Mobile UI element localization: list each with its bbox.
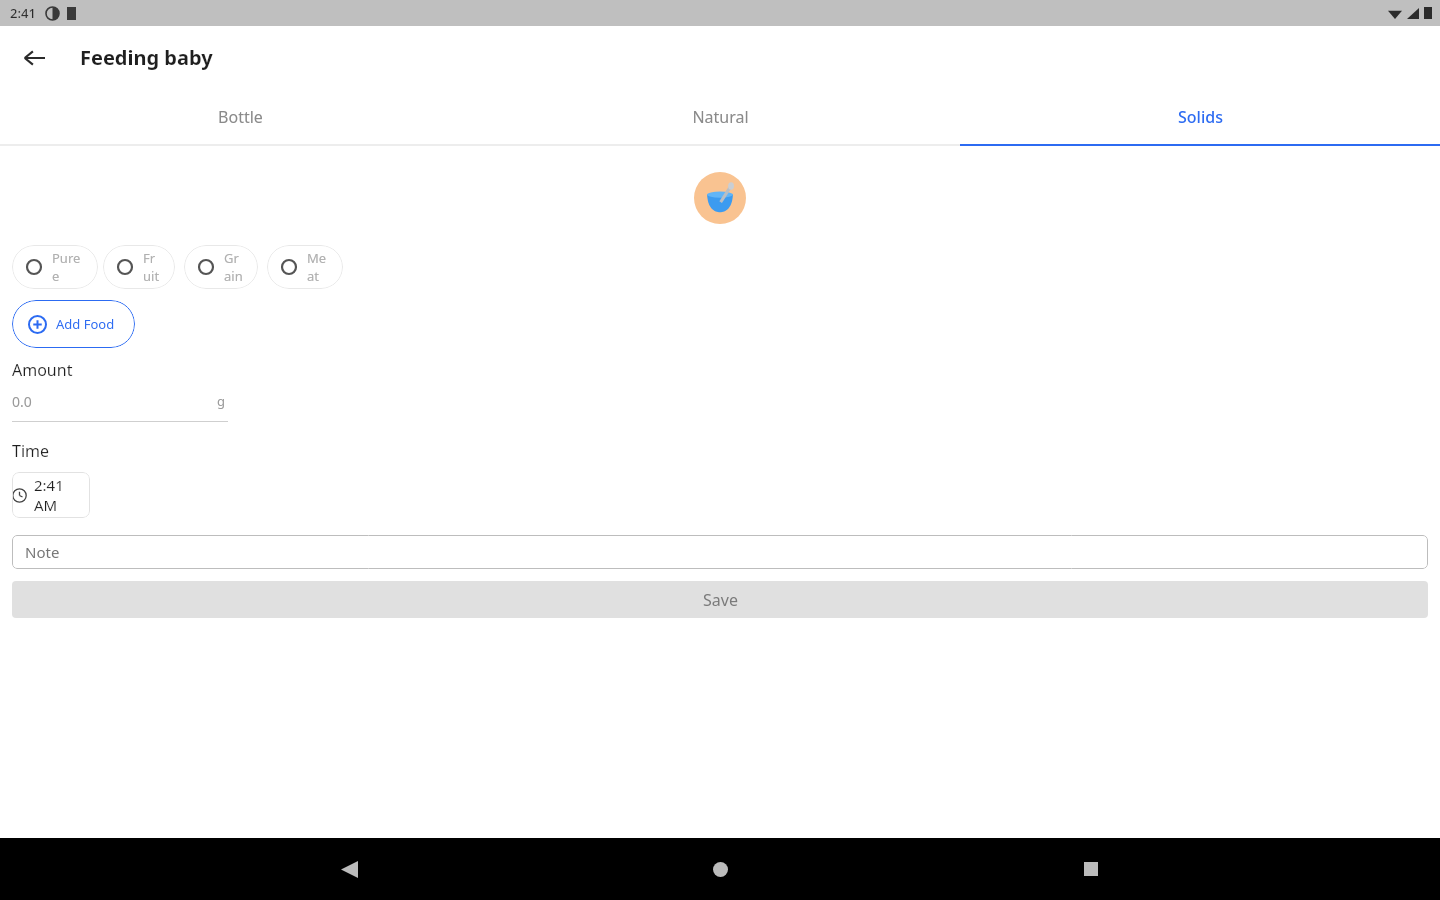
button[interactable]: Back [12,36,56,80]
staticText: Solids [1178,106,1223,128]
button[interactable]: Home [698,847,742,891]
staticText: Add Food [56,315,115,333]
staticText: g [217,392,225,410]
button[interactable]: Puree [12,245,98,289]
staticText: Save [703,589,738,611]
staticText: Feeding baby [80,44,213,71]
button[interactable]: Fruit [103,245,175,289]
staticText: Amount [12,359,73,381]
button[interactable]: Grain [184,245,258,289]
staticText: Note [25,542,60,562]
button[interactable]: Note [12,535,1428,569]
button[interactable]: Add Food [12,300,135,348]
button[interactable]: Meat [267,245,343,289]
staticText: Bottle [218,106,263,128]
staticText: Time [12,440,50,462]
staticText: 0.0 [12,392,32,411]
button[interactable]: Save [12,581,1428,618]
button[interactable]: Recents [1069,847,1113,891]
button[interactable]: Bottle [0,89,480,144]
button[interactable]: 2:41 AM [12,472,90,518]
staticText: Puree [52,249,84,285]
staticText: 2:41 [10,4,36,22]
staticText: Fruit [143,249,161,285]
staticText: Natural [692,106,749,128]
staticText: Meat [307,249,329,285]
staticText: 2:41 AM [34,475,90,515]
button[interactable]: Back [327,847,371,891]
staticText: Grain [224,249,244,285]
button[interactable]: Natural [480,89,960,144]
button[interactable]: Solids [960,89,1440,144]
